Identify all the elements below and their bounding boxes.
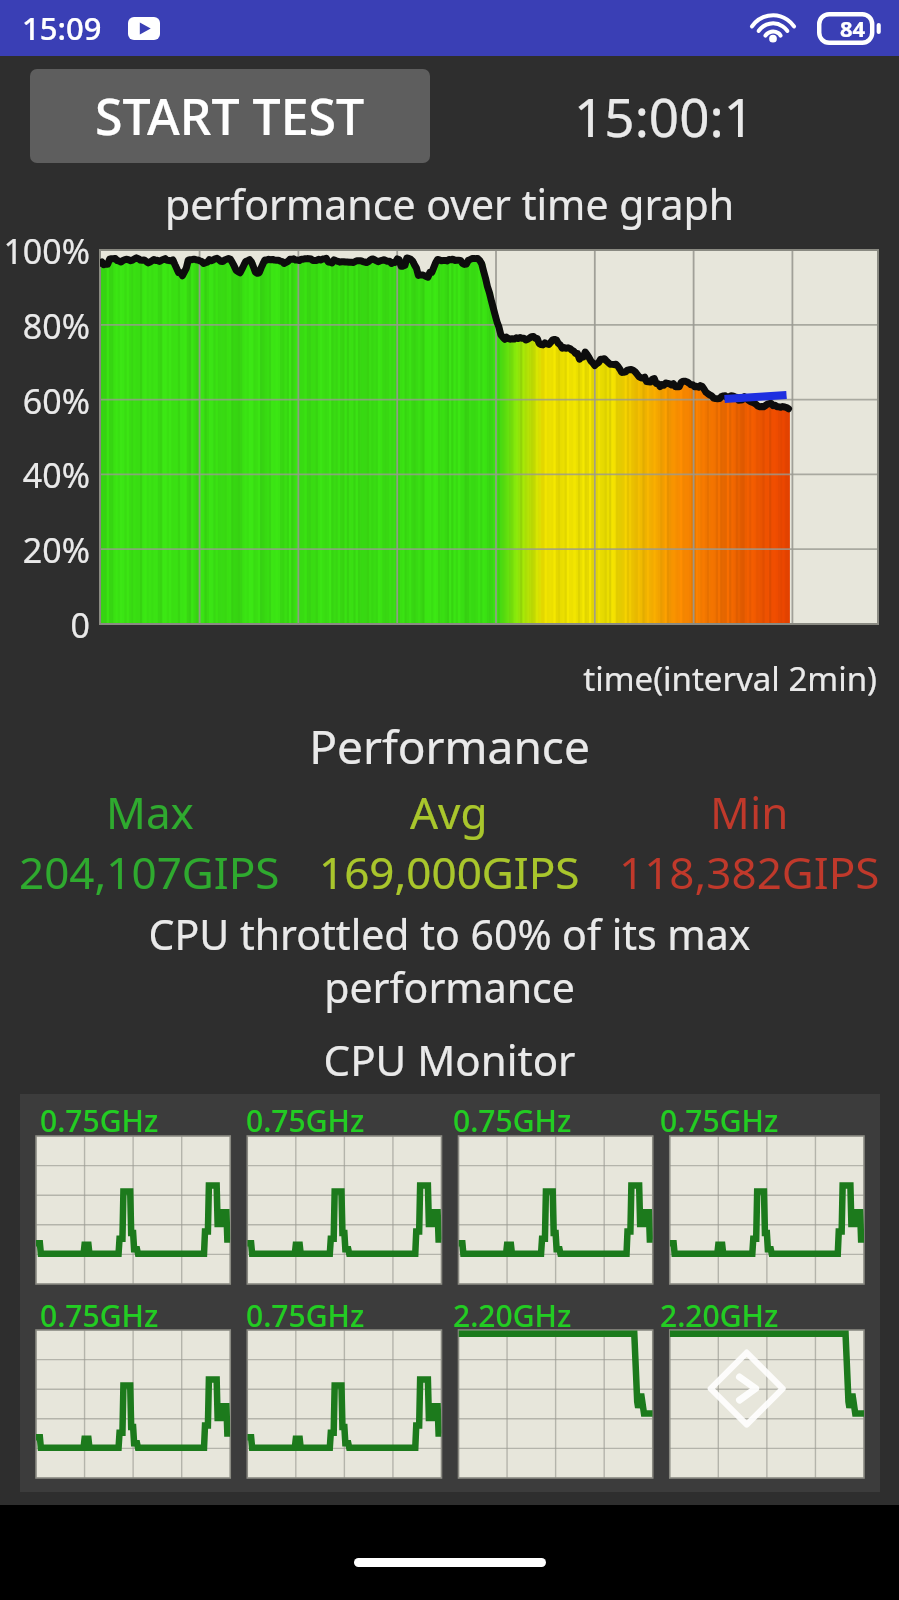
staticText: 0 <box>0 602 90 648</box>
staticText: 40% <box>0 452 90 498</box>
staticText: Min <box>710 782 789 842</box>
staticText: time(interval 2min) <box>0 656 877 701</box>
staticText: CPU Monitor <box>0 1031 899 1088</box>
staticText: 100% <box>0 228 90 274</box>
button[interactable]: Home <box>354 1558 546 1567</box>
staticText: 2.20GHz <box>453 1295 572 1336</box>
staticText: Avg <box>410 782 488 842</box>
staticText: 204,107GIPS <box>19 842 280 902</box>
staticText: 0.75GHz <box>40 1100 159 1141</box>
staticText: 118,382GIPS <box>619 842 880 902</box>
staticText: 2.20GHz <box>660 1295 779 1336</box>
staticText: 0.75GHz <box>453 1100 572 1141</box>
staticText: 20% <box>0 527 90 573</box>
staticText: 15:00:1 <box>574 80 754 152</box>
staticText: Performance <box>0 715 899 778</box>
other: Wi-Fi <box>755 15 791 42</box>
staticText: 0.75GHz <box>246 1100 365 1141</box>
staticText: 169,000GIPS <box>319 842 580 902</box>
button[interactable]: START TEST <box>30 69 430 163</box>
staticText: 0.75GHz <box>246 1295 365 1336</box>
staticText: 84 <box>840 13 866 43</box>
staticText: START TEST <box>95 82 365 150</box>
staticText: 0.75GHz <box>660 1100 779 1141</box>
other: Battery 84 percent <box>817 12 883 45</box>
staticText: 60% <box>0 378 90 424</box>
other: Media notification <box>128 17 160 40</box>
staticText: 80% <box>0 303 90 349</box>
staticText: CPU throttled to 60% of its max performa… <box>62 906 837 1015</box>
staticText: performance over time graph <box>0 176 899 232</box>
staticText: 0.75GHz <box>40 1295 159 1336</box>
staticText: 15:09 <box>22 7 102 49</box>
staticText: Max <box>106 782 194 842</box>
